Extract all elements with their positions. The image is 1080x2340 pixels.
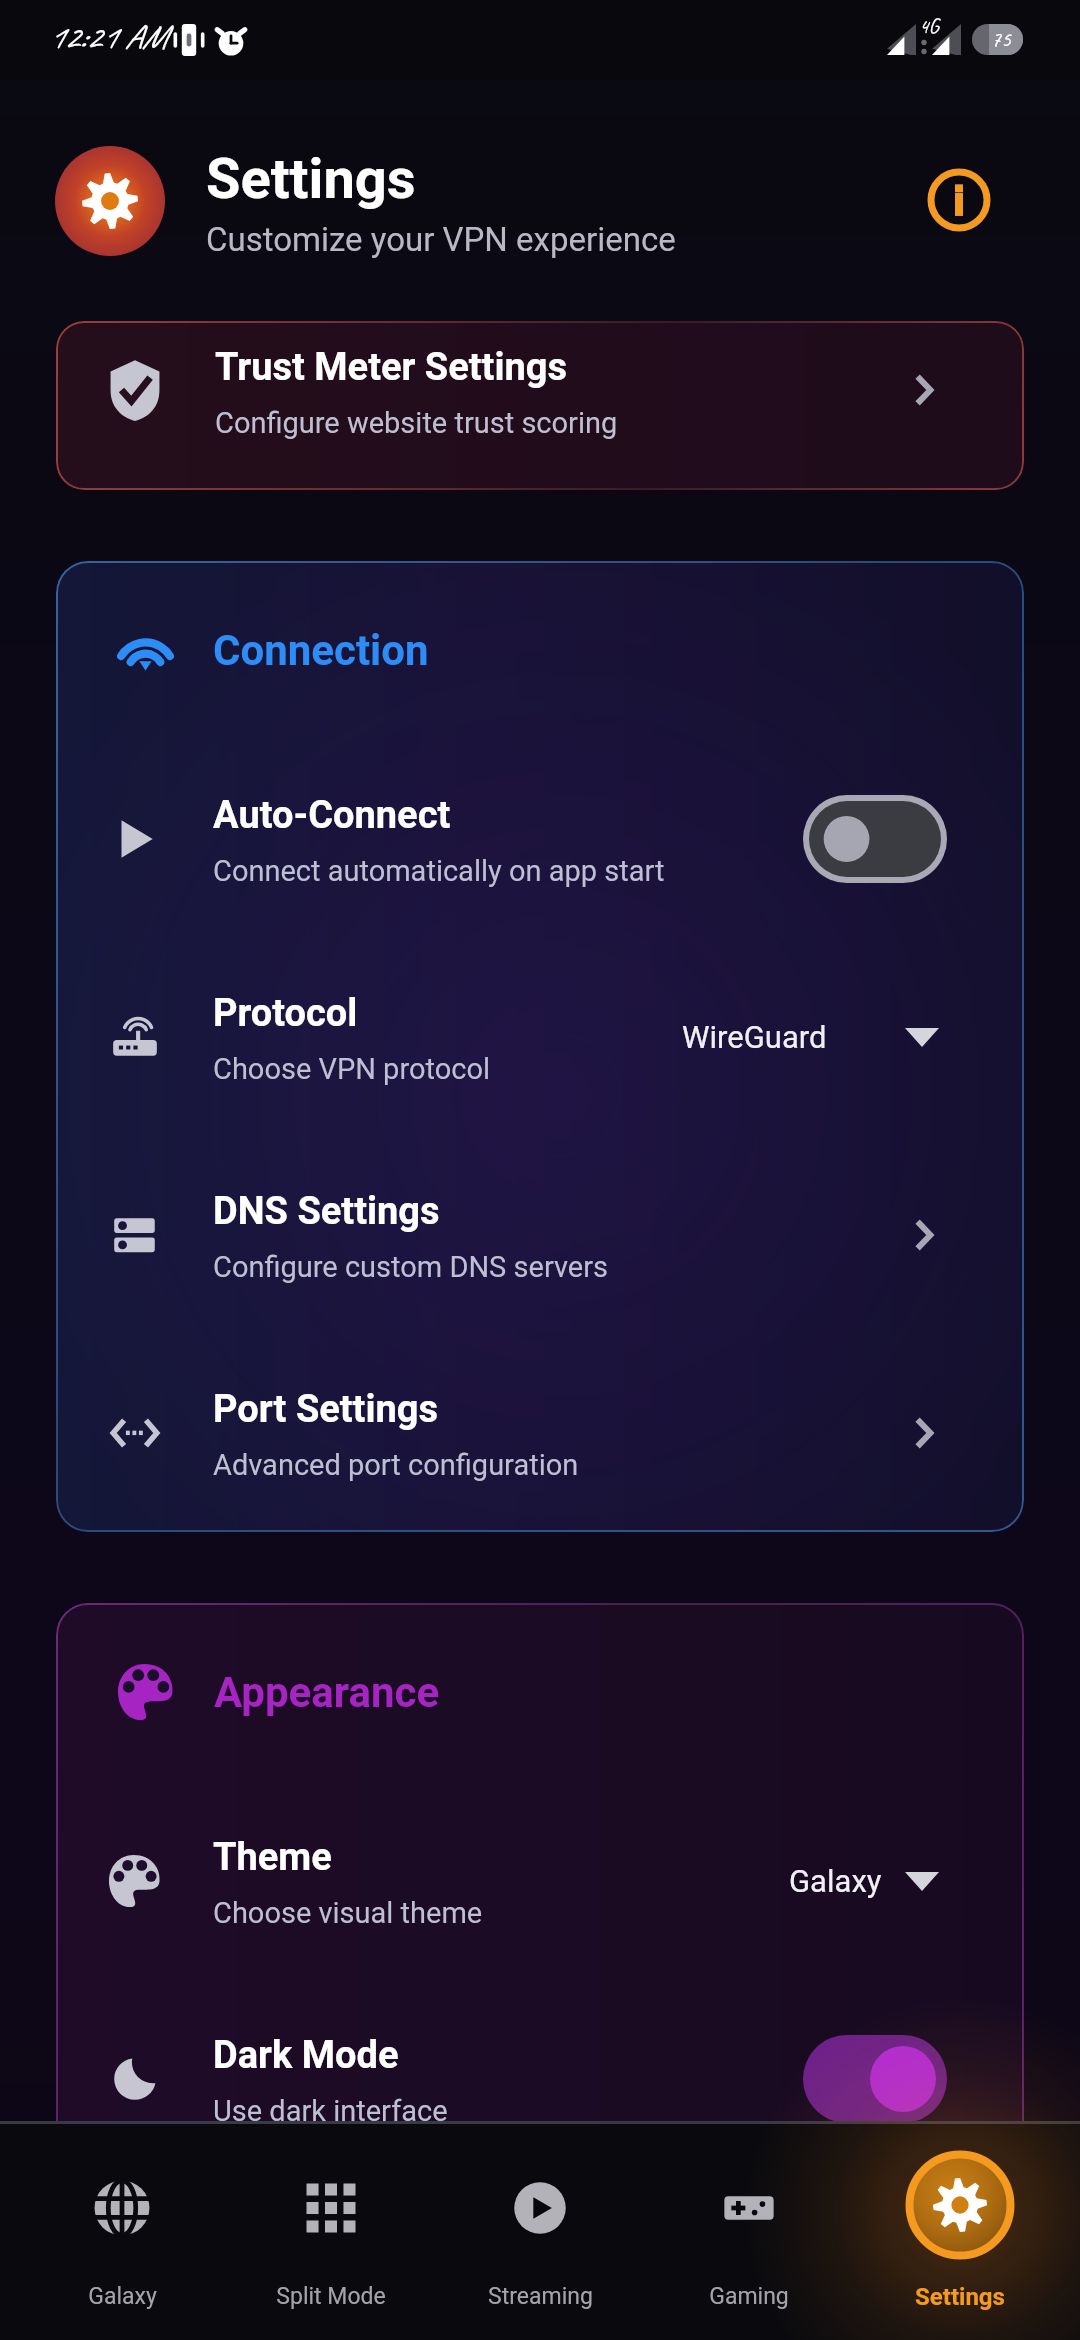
button[interactable]: Trust Meter Settings: [56, 321, 1024, 490]
staticText: DNS Settings: [213, 1189, 440, 1234]
button[interactable]: Port Settings: [56, 1374, 1024, 1492]
button[interactable]: Gaming: [649, 2124, 849, 2340]
staticText: Settings: [206, 146, 416, 212]
staticText: Choose visual theme: [213, 1896, 483, 1930]
staticText: Theme: [213, 1835, 332, 1880]
button[interactable]: Auto-Connect: [56, 780, 1024, 898]
button[interactable]: Streaming: [440, 2124, 640, 2340]
staticText: Appearance: [214, 1668, 440, 1717]
staticText: Advanced port configuration: [213, 1448, 579, 1482]
button[interactable]: Switch on: [803, 2035, 947, 2123]
button[interactable]: Dark Mode: [56, 2020, 1024, 2138]
button[interactable]: Information: [909, 150, 1009, 250]
staticText: 12:21 AM: [48, 15, 167, 58]
staticText: Choose VPN protocol: [213, 1052, 490, 1086]
staticText: Streaming: [488, 2283, 593, 2310]
staticText: Connection: [213, 626, 429, 675]
staticText: Auto-Connect: [213, 793, 451, 838]
button[interactable]: WireGuard: [682, 1019, 939, 1055]
button[interactable]: Switch off: [803, 795, 947, 883]
button[interactable]: Galaxy: [22, 2124, 222, 2340]
staticText: Protocol: [213, 991, 358, 1036]
staticText: Configure custom DNS servers: [213, 1250, 608, 1284]
button[interactable]: Split Mode: [231, 2124, 431, 2340]
staticText: Trust Meter Settings: [215, 345, 568, 390]
staticText: Galaxy: [88, 2283, 157, 2310]
button[interactable]: Theme: [56, 1822, 1024, 1940]
staticText: Gaming: [709, 2283, 789, 2310]
staticText: Settings: [915, 2283, 1005, 2311]
staticText: 4G: [919, 13, 939, 39]
staticText: Use dark interface: [213, 2094, 448, 2128]
staticText: 75: [991, 25, 1011, 53]
staticText: Customize your VPN experience: [206, 220, 676, 259]
button[interactable]: Protocol: [56, 978, 1024, 1096]
staticText: Dark Mode: [213, 2033, 399, 2078]
staticText: Configure website trust scoring: [215, 406, 618, 440]
staticText: Connect automatically on app start: [213, 854, 665, 888]
staticText: Split Mode: [276, 2283, 386, 2310]
staticText: WireGuard: [682, 1019, 827, 1055]
staticText: Galaxy: [789, 1863, 882, 1899]
button[interactable]: DNS Settings: [56, 1176, 1024, 1294]
staticText: Port Settings: [213, 1387, 439, 1432]
button[interactable]: Settings: [860, 2124, 1060, 2340]
button[interactable]: Galaxy: [789, 1863, 939, 1899]
